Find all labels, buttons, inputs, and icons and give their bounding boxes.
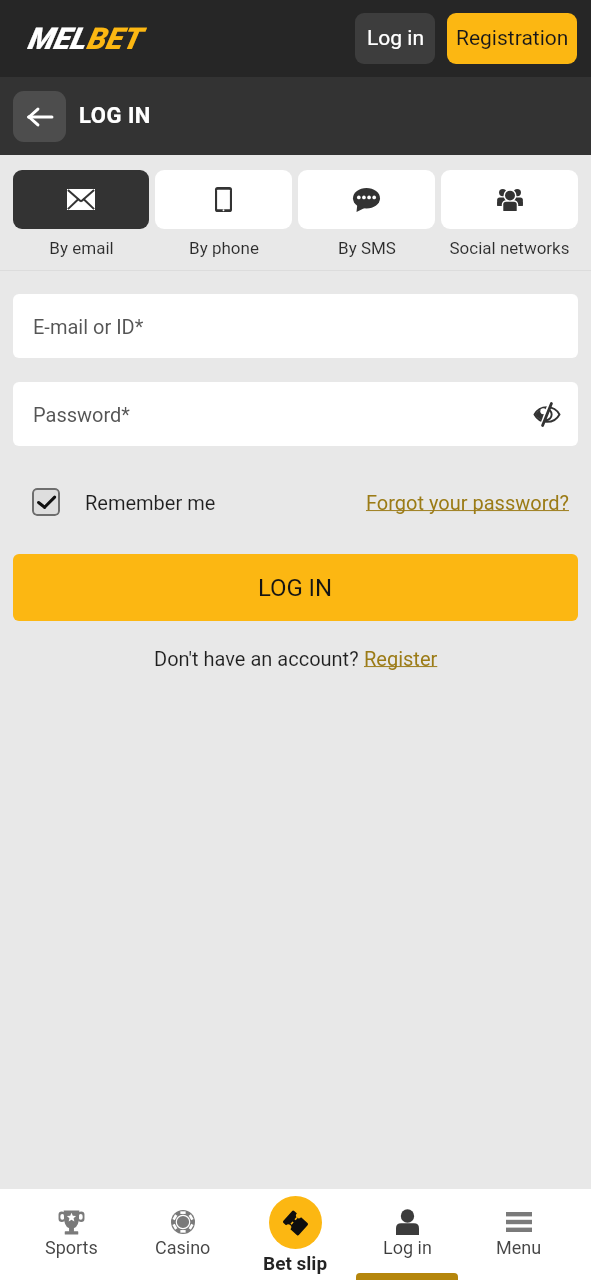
- button[interactable]: By SMS: [298, 170, 435, 258]
- staticText: Don't have an account?: [154, 647, 364, 670]
- button[interactable]: Password*: [13, 382, 578, 446]
- button[interactable]: Registration: [447, 13, 577, 64]
- staticText: By SMS: [338, 238, 396, 258]
- staticText: Casino: [155, 1237, 211, 1258]
- staticText: Sports: [45, 1237, 98, 1258]
- button[interactable]: Show password: [528, 395, 566, 433]
- staticText: BET: [86, 21, 141, 56]
- staticText: Bet slip: [263, 1252, 328, 1274]
- staticText: By email: [49, 238, 114, 258]
- button[interactable]: Register: [364, 647, 438, 670]
- staticText: Registration: [456, 26, 569, 51]
- button[interactable]: Forgot your password?: [366, 491, 569, 514]
- staticText: Menu: [496, 1237, 542, 1258]
- button[interactable]: Log in: [351, 1189, 463, 1280]
- staticText: Log in: [383, 1237, 432, 1258]
- staticText: Log in: [367, 26, 424, 51]
- button[interactable]: By phone: [155, 170, 292, 258]
- button[interactable]: Sports: [16, 1189, 127, 1280]
- staticText: Forgot your password?: [366, 491, 569, 514]
- button[interactable]: Log in: [355, 13, 435, 64]
- staticText: LOG IN: [79, 103, 151, 129]
- button[interactable]: Menu: [463, 1189, 575, 1280]
- button[interactable]: Bet slip: [239, 1189, 351, 1280]
- staticText: Register: [364, 647, 438, 670]
- staticText: MEL: [27, 21, 86, 56]
- button[interactable]: Back: [13, 91, 66, 142]
- staticText: Social networks: [449, 238, 570, 258]
- staticText: By phone: [189, 238, 259, 258]
- button[interactable]: Casino: [127, 1189, 239, 1280]
- button[interactable]: Social networks: [441, 170, 578, 258]
- button[interactable]: E-mail or ID*: [13, 294, 578, 358]
- button[interactable]: By email: [13, 170, 149, 258]
- staticText: E-mail or ID*: [33, 315, 144, 338]
- staticText: LOG IN: [258, 574, 333, 602]
- staticText: Password*: [33, 403, 130, 426]
- button[interactable]: Remember me: [32, 488, 216, 516]
- staticText: Remember me: [85, 491, 216, 514]
- button[interactable]: LOG IN: [13, 554, 578, 621]
